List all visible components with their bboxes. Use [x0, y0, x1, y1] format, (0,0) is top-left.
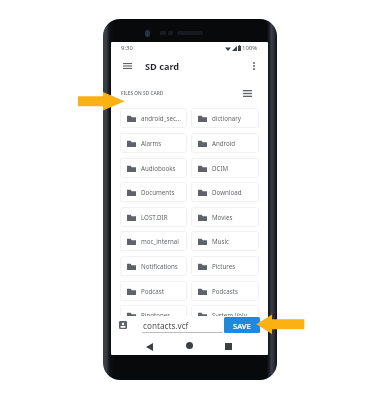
button[interactable]: Notifications	[120, 256, 187, 276]
staticText: Pictures	[212, 262, 236, 270]
button[interactable]: DCIM	[191, 158, 259, 178]
staticText: DCIM	[212, 164, 229, 172]
staticText: Alarms	[141, 139, 162, 147]
button[interactable]: SAVE	[224, 317, 260, 333]
button[interactable]: Switch to list view	[238, 85, 256, 101]
staticText: Music	[212, 237, 229, 245]
button[interactable]: More options	[245, 56, 262, 76]
staticText: Android	[212, 139, 236, 147]
button[interactable]: Podcast	[120, 281, 187, 301]
button[interactable]: Home	[182, 338, 197, 353]
staticText: FILES ON SD CARD	[121, 90, 164, 97]
staticText: 100%	[242, 44, 258, 52]
button[interactable]: android_sec...	[120, 108, 187, 128]
staticText: 9:30	[121, 44, 133, 52]
button[interactable]: Android	[191, 133, 259, 153]
button[interactable]: Download	[191, 182, 259, 202]
staticText: SD card	[145, 60, 180, 73]
button[interactable]: Recent apps	[221, 339, 236, 354]
staticText: LOST.DIR	[141, 213, 168, 221]
button[interactable]: Movies	[191, 207, 259, 227]
staticText: Download	[212, 188, 242, 196]
staticText: android_sec...	[141, 114, 181, 122]
staticText: dictionary	[212, 114, 241, 122]
staticText: System Volu...	[212, 311, 253, 316]
button[interactable]: Podcasts	[191, 281, 259, 301]
staticText: Notifications	[141, 262, 178, 270]
staticText: Audiobooks	[141, 164, 176, 172]
staticText: Movies	[212, 213, 233, 221]
button[interactable]: moc_internal	[120, 231, 187, 251]
button[interactable]: Music	[191, 231, 259, 251]
button[interactable]: Ringtones	[120, 305, 187, 316]
button[interactable]: Pictures	[191, 256, 259, 276]
staticText: Documents	[141, 188, 175, 196]
button[interactable]: Alarms	[120, 133, 187, 153]
staticText: moc_internal	[141, 237, 179, 245]
button[interactable]: Navigation menu	[117, 56, 137, 76]
button[interactable]: dictionary	[191, 108, 259, 128]
staticText: Podcasts	[212, 287, 238, 295]
staticText: SAVE	[233, 321, 251, 331]
button[interactable]: System Volu...	[191, 305, 259, 316]
button[interactable]: LOST.DIR	[120, 207, 187, 227]
button[interactable]: Back	[142, 339, 157, 354]
staticText: contacts.vcf	[143, 320, 189, 331]
staticText: Podcast	[141, 287, 164, 295]
staticText: Ringtones	[141, 311, 171, 316]
button[interactable]: Documents	[120, 182, 187, 202]
button[interactable]: Audiobooks	[120, 158, 187, 178]
